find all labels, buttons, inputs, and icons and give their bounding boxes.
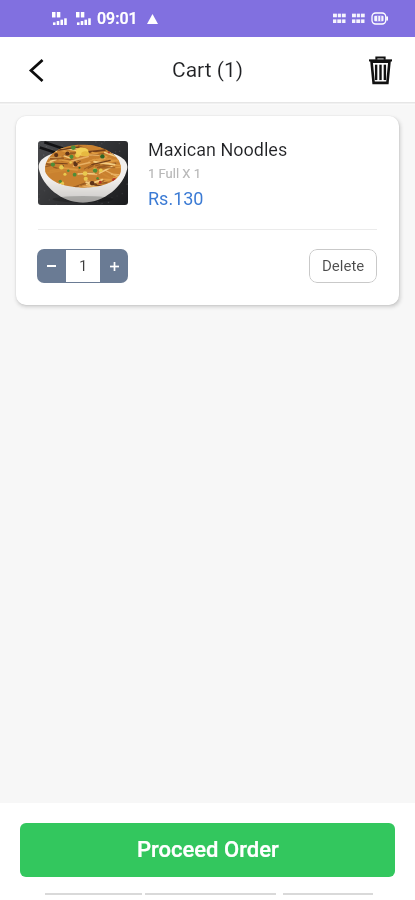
button[interactable]: Increase quantity [100, 249, 128, 283]
staticText: 09:01 [97, 9, 138, 28]
staticText: Rs.130 [148, 188, 204, 209]
staticText: Delete [322, 257, 365, 275]
staticText: Cart (1) [172, 58, 244, 83]
button[interactable]: Proceed Order [20, 823, 395, 877]
button[interactable]: Back [14, 48, 58, 92]
staticText: 1 [79, 257, 88, 275]
button[interactable]: Delete all items [358, 48, 402, 92]
button[interactable]: Delete [309, 249, 377, 283]
staticText: 1 Full X 1 [148, 166, 201, 181]
staticText: Proceed Order [137, 837, 279, 863]
button[interactable]: Decrease quantity [37, 249, 66, 283]
staticText: Maxican Noodles [148, 139, 288, 160]
